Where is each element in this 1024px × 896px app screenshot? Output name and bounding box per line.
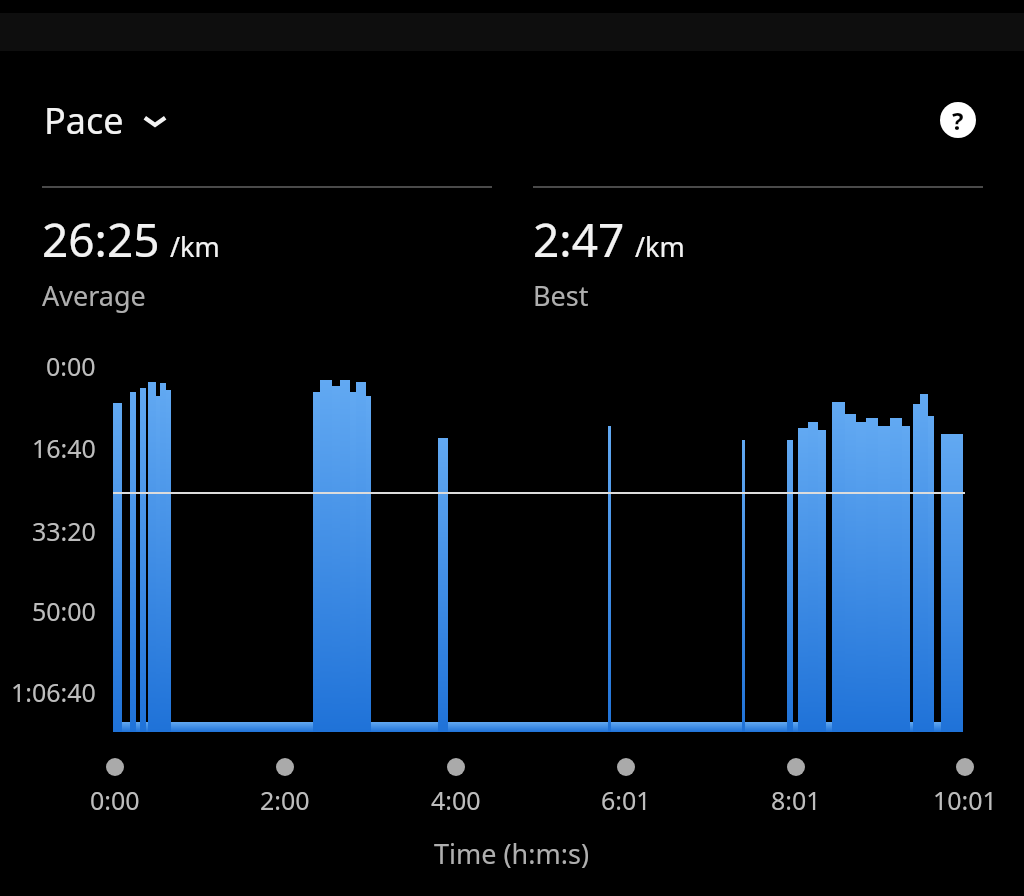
staticText: /km [170, 228, 220, 265]
staticText: 0:00 [46, 349, 96, 383]
staticText: 16:40 [32, 431, 96, 465]
staticText: 4:00 [431, 783, 481, 817]
staticText: 50:00 [32, 594, 96, 628]
staticText: /km [635, 228, 685, 265]
staticText: 0:00 [90, 783, 140, 817]
button[interactable]: Help [932, 94, 984, 146]
staticText: 26:25 [42, 208, 160, 271]
staticText: Pace [44, 96, 124, 145]
staticText: Time (h:m:s) [434, 835, 590, 872]
staticText: ? [952, 104, 964, 137]
staticText: 2:00 [260, 783, 310, 817]
staticText: 1:06:40 [11, 675, 96, 709]
staticText: Average [42, 277, 146, 314]
staticText: 10:01 [933, 783, 997, 817]
staticText: 2:47 [533, 208, 625, 271]
button[interactable]: Pace [40, 92, 174, 149]
staticText: 6:01 [601, 783, 651, 817]
staticText: Best [533, 277, 589, 314]
staticText: 8:01 [771, 783, 821, 817]
staticText: 33:20 [32, 514, 96, 548]
